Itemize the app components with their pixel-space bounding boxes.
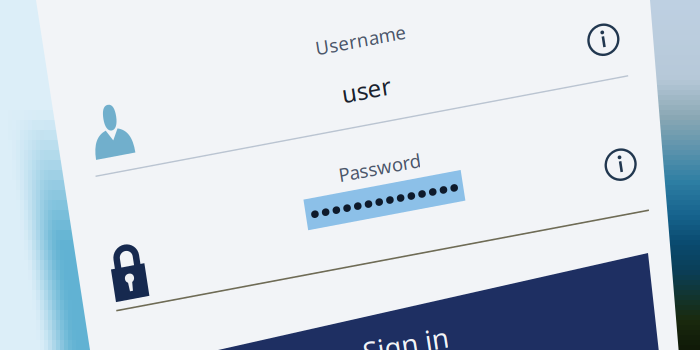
button[interactable]: Sign in: [0, 0, 700, 350]
staticText: Username: [469, 203, 561, 227]
staticText: user: [488, 249, 538, 281]
staticText: Sign in: [0, 0, 87, 37]
